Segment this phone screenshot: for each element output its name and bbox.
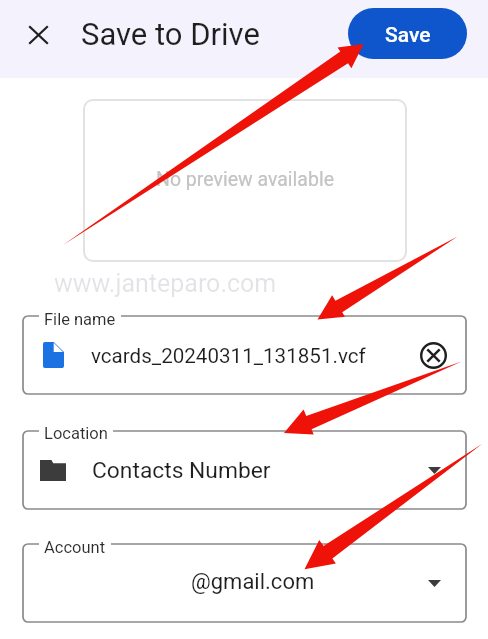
button[interactable]: Save [348,8,467,59]
staticText: vcards_20240311_131851.vcf [91,344,366,368]
staticText: Save to Drive [81,16,260,52]
staticText: @gmail.com [191,569,315,595]
button[interactable]: Clear file name [415,337,451,373]
button[interactable]: Expand account [418,567,450,599]
staticText: File name [44,310,116,329]
staticText: Contacts Number [92,457,271,484]
button[interactable]: vcards_20240311_131851.vcf [23,316,466,394]
staticText: Save [385,23,431,48]
staticText: www.janteparo.com [54,269,277,298]
staticText: Location [44,424,108,443]
button[interactable]: Close [14,11,62,59]
staticText: Account [44,538,106,557]
button[interactable]: Contacts Number [23,431,466,509]
staticText: No preview available [156,168,334,191]
button[interactable]: Expand location [418,454,450,486]
button[interactable]: @gmail.com [23,544,466,622]
